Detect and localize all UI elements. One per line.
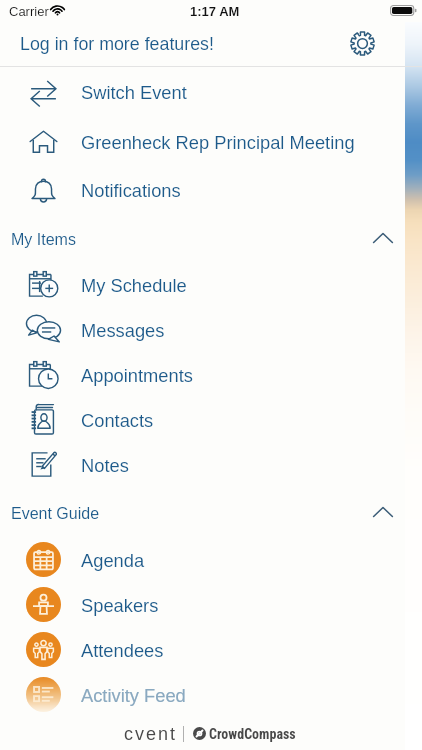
staticText: Carrier — [9, 4, 49, 19]
button[interactable]: Switch Event — [0, 67, 422, 117]
button[interactable]: Agenda — [0, 537, 422, 582]
staticText: My Items — [11, 231, 76, 249]
staticText: cvent — [124, 724, 178, 744]
staticText: 1:17 AM — [190, 4, 240, 19]
button[interactable]: Settings — [340, 21, 384, 65]
button[interactable]: Appointments — [0, 352, 422, 397]
button[interactable]: Notes — [0, 442, 422, 487]
button[interactable]: Greenheck Rep Principal Meeting — [0, 117, 422, 166]
button[interactable]: My Items — [0, 214, 422, 262]
staticText: My Schedule — [81, 275, 187, 295]
staticText: Switch Event — [81, 82, 187, 102]
button[interactable]: Attendees — [0, 627, 422, 672]
button[interactable]: Speakers — [0, 582, 422, 627]
button[interactable]: Contacts — [0, 397, 422, 442]
button[interactable]: Event Guide — [0, 487, 422, 537]
staticText: Messages — [81, 320, 165, 340]
staticText: Contacts — [81, 410, 154, 430]
staticText: Notifications — [81, 180, 181, 200]
button[interactable]: My Schedule — [0, 262, 422, 307]
staticText: Appointments — [81, 365, 193, 385]
staticText: Event Guide — [11, 505, 100, 523]
button[interactable]: Activity Feed — [0, 672, 422, 717]
staticText: Notes — [81, 455, 129, 475]
staticText: Greenheck Rep Principal Meeting — [81, 132, 355, 152]
staticText: Activity Feed — [81, 685, 186, 705]
button[interactable]: Messages — [0, 307, 422, 352]
button[interactable]: Log in for more features! — [0, 22, 422, 66]
staticText: Log in for more features! — [20, 34, 214, 54]
staticText: Agenda — [81, 550, 145, 570]
button[interactable]: Notifications — [0, 166, 422, 214]
staticText: Speakers — [81, 595, 159, 615]
staticText: CrowdCompass — [209, 726, 296, 742]
staticText: Attendees — [81, 640, 164, 660]
